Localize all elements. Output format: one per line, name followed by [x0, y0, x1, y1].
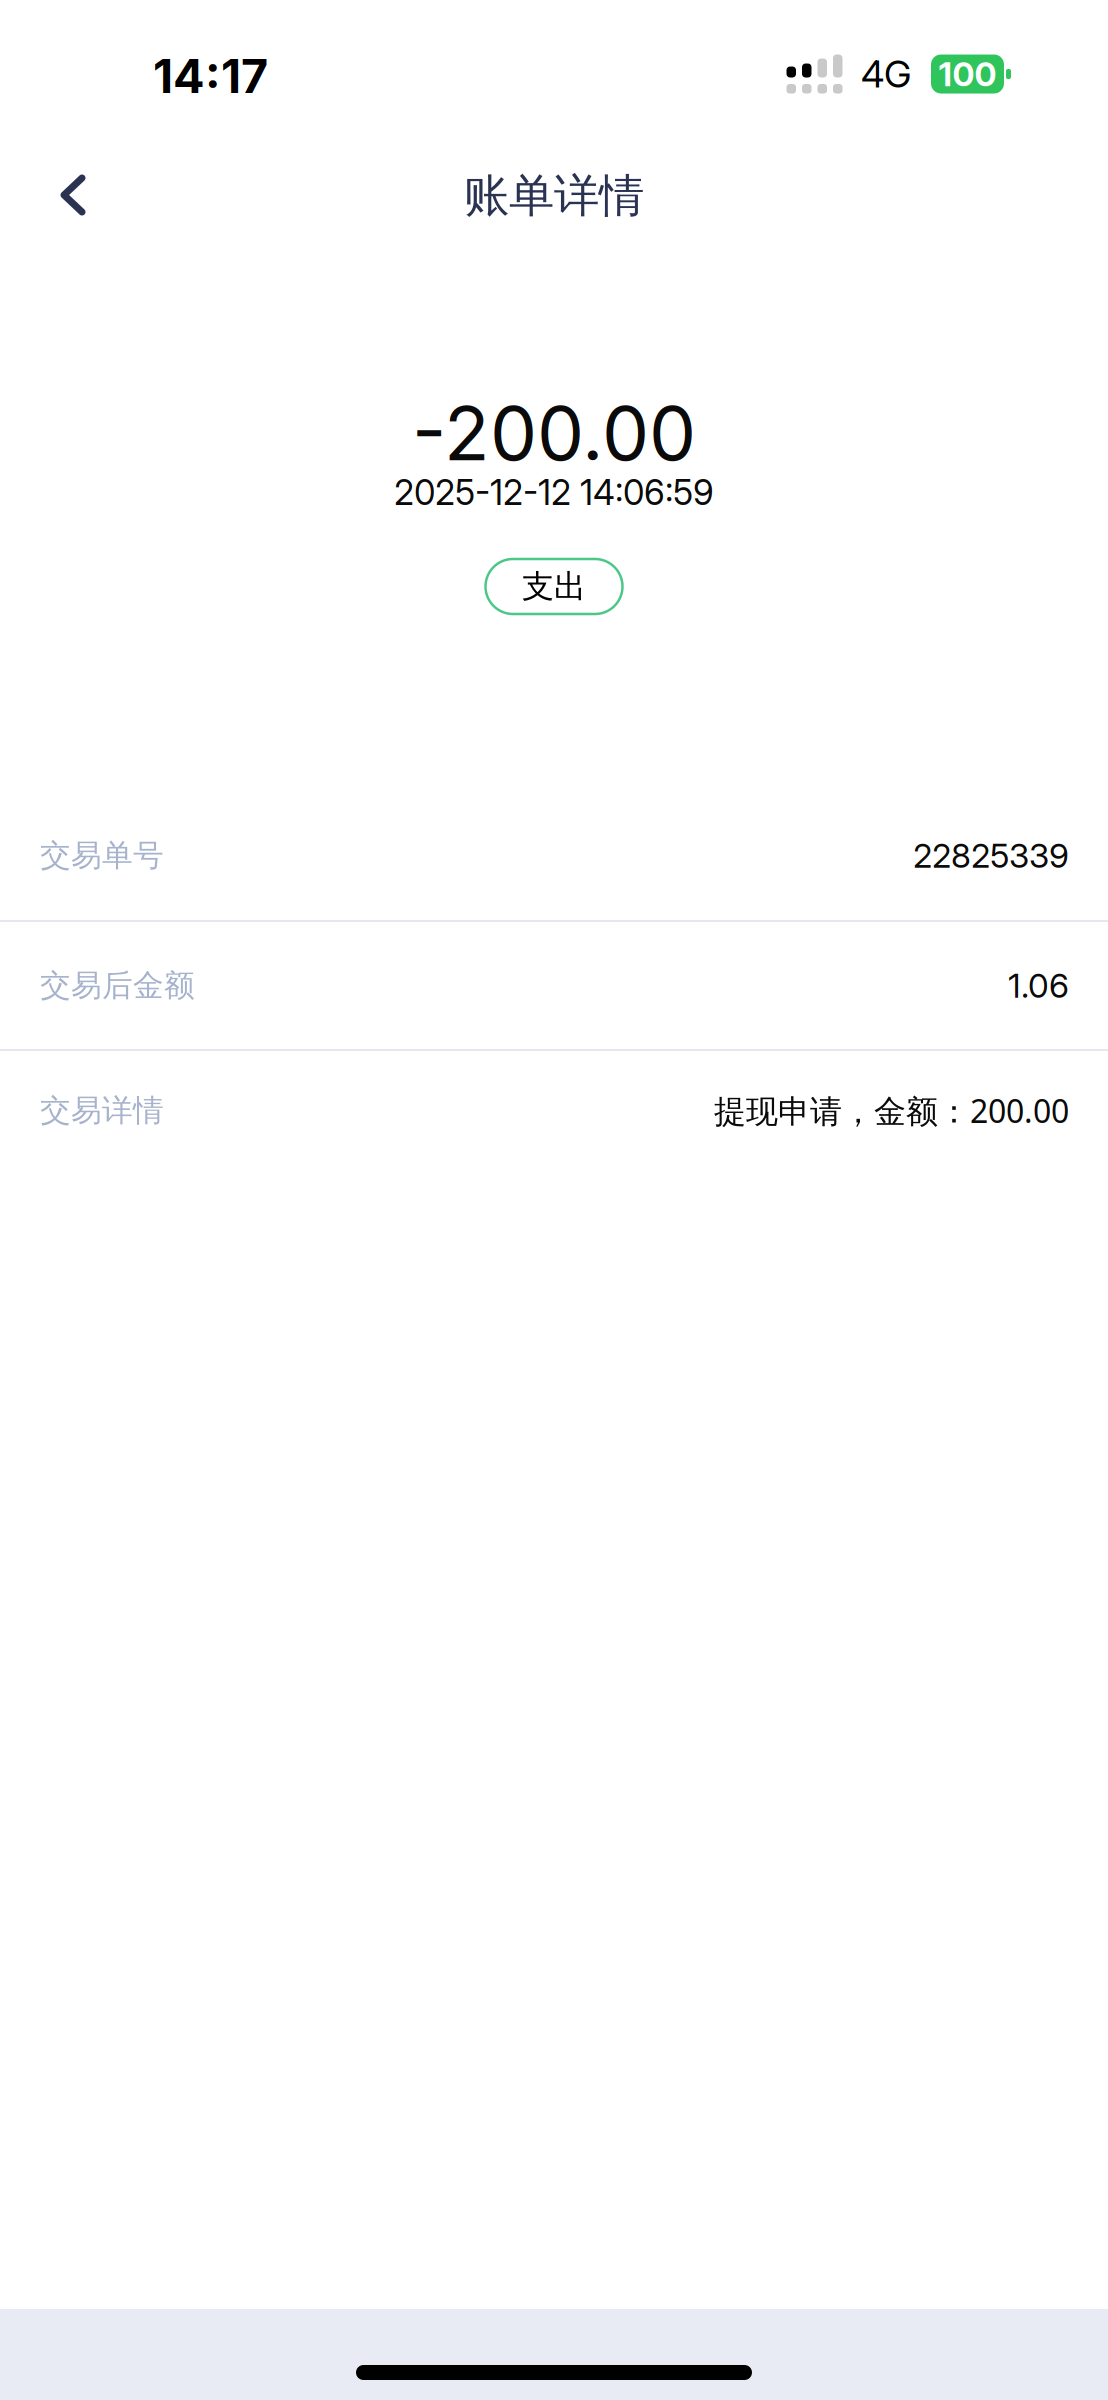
staticText: 交易后金额	[40, 967, 195, 1004]
staticText: -200.00	[412, 388, 696, 478]
staticText: 提现申请，金额：200.00	[714, 1089, 1069, 1132]
button[interactable]: 交易单号	[0, 791, 1108, 920]
button[interactable]: 返回	[33, 158, 113, 238]
staticText: 22825339	[913, 835, 1069, 876]
staticText: 支出	[522, 566, 586, 607]
staticText: 交易单号	[40, 837, 164, 874]
staticText: 100	[938, 54, 996, 94]
staticText: 14:17	[153, 48, 268, 104]
staticText: 账单详情	[464, 167, 644, 224]
staticText: 2025-12-12 14:06:59	[394, 471, 714, 513]
staticText: 1.06	[1008, 965, 1069, 1006]
button[interactable]: 支出	[485, 559, 622, 614]
staticText: 交易详情	[40, 1092, 164, 1129]
staticText: 4G	[861, 51, 911, 97]
button[interactable]: 交易详情	[0, 1051, 1108, 1180]
button[interactable]: 交易后金额	[0, 922, 1108, 1049]
